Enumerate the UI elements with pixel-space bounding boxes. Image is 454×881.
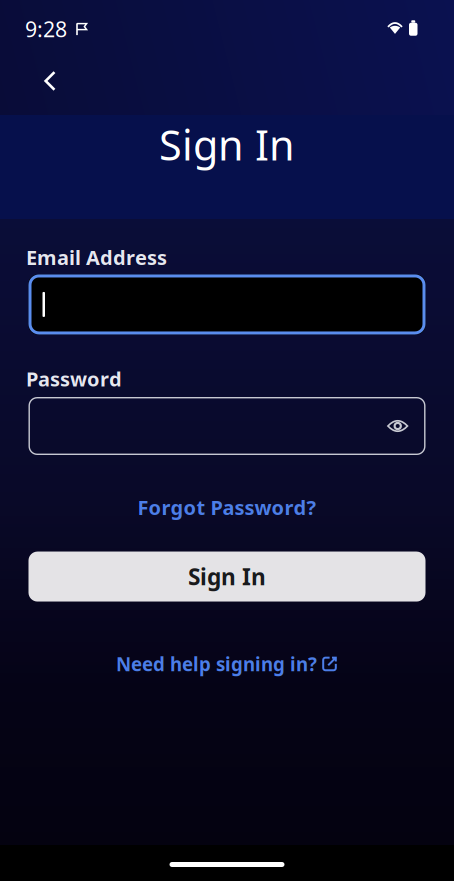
button[interactable]: Forgot Password? — [137, 494, 316, 521]
staticText: Forgot Password? — [137, 494, 316, 521]
button[interactable]: Email Address — [28, 274, 425, 334]
staticText: Need help signing in? — [116, 652, 317, 676]
button[interactable]: Back — [28, 66, 72, 96]
staticText: Sign In — [188, 561, 266, 592]
button[interactable]: Password — [28, 397, 425, 455]
staticText: Email Address — [26, 244, 167, 270]
button[interactable]: Need help signing in? — [116, 652, 338, 676]
button[interactable]: Sign In — [28, 552, 425, 602]
staticText: Password — [26, 365, 122, 392]
staticText: 9:28 — [25, 15, 67, 43]
staticText: Sign In — [159, 117, 295, 172]
button[interactable]: Show password — [387, 419, 408, 433]
